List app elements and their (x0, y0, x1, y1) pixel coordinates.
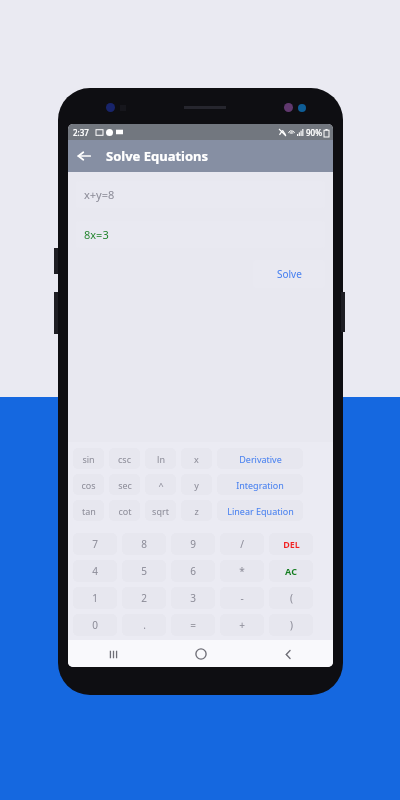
button[interactable]: 5 (122, 560, 166, 582)
staticText: AC (285, 565, 297, 577)
staticText: Solve (277, 267, 302, 281)
staticText: = (190, 618, 196, 632)
staticText: y (194, 479, 199, 491)
button[interactable]: = (171, 614, 215, 636)
button[interactable]: ( (269, 587, 313, 609)
staticText: 0 (92, 618, 98, 632)
staticText: 1 (92, 591, 98, 605)
staticText: ( (290, 591, 293, 605)
staticText: * (239, 564, 245, 578)
button[interactable]: sin (73, 448, 104, 469)
staticText: sqrt (152, 505, 169, 517)
staticText: 9 (190, 537, 196, 551)
staticText: 8 (141, 537, 147, 551)
staticText: cos (81, 479, 96, 491)
button[interactable]: Home (188, 641, 214, 667)
button[interactable]: / (220, 533, 264, 555)
staticText: csc (118, 453, 131, 465)
button[interactable]: DEL (269, 533, 313, 555)
staticText: / (240, 537, 244, 551)
button[interactable]: y (181, 474, 212, 495)
button[interactable]: ) (269, 614, 313, 636)
staticText: Linear Equation (227, 505, 294, 517)
button[interactable]: Recent apps (100, 641, 126, 667)
staticText: x+y=8 (84, 187, 115, 202)
staticText: ^ (158, 479, 164, 491)
staticText: Solve Equations (106, 147, 209, 165)
button[interactable]: 9 (171, 533, 215, 555)
button[interactable]: ln (145, 448, 176, 469)
button[interactable]: sqrt (145, 500, 176, 521)
button[interactable]: Derivative (217, 448, 303, 469)
button[interactable]: 1 (73, 587, 117, 609)
button[interactable]: Back (71, 143, 97, 169)
staticText: 8x=3 (84, 227, 109, 242)
button[interactable]: 2 (122, 587, 166, 609)
button[interactable]: * (220, 560, 264, 582)
staticText: sec (118, 479, 132, 491)
button[interactable]: z (181, 500, 212, 521)
staticText: 4 (92, 564, 98, 578)
button[interactable]: x+y=8 (76, 181, 325, 208)
button[interactable]: 0 (73, 614, 117, 636)
button[interactable]: 3 (171, 587, 215, 609)
staticText: 7 (92, 537, 98, 551)
staticText: 2 (141, 591, 147, 605)
button[interactable]: - (220, 587, 264, 609)
button[interactable]: Linear Equation (217, 500, 303, 521)
staticText: - (240, 591, 244, 605)
button[interactable]: Solve (253, 260, 325, 288)
button[interactable]: 6 (171, 560, 215, 582)
staticText: 90% (306, 127, 322, 138)
button[interactable]: Back (275, 641, 301, 667)
staticText: Integration (236, 479, 284, 491)
button[interactable]: 7 (73, 533, 117, 555)
button[interactable]: cos (73, 474, 104, 495)
staticText: z (194, 505, 199, 517)
button[interactable]: + (220, 614, 264, 636)
staticText: Derivative (239, 453, 282, 465)
button[interactable]: 8x=3 (76, 221, 325, 248)
button[interactable]: sec (109, 474, 140, 495)
staticText: ) (290, 618, 293, 632)
staticText: 2:37 (73, 127, 89, 138)
staticText: cot (118, 505, 132, 517)
staticText: + (239, 618, 245, 632)
staticText: 6 (190, 564, 196, 578)
staticText: x (194, 453, 199, 465)
button[interactable]: AC (269, 560, 313, 582)
staticText: sin (82, 453, 95, 465)
staticText: . (143, 618, 146, 632)
staticText: tan (82, 505, 96, 517)
button[interactable]: csc (109, 448, 140, 469)
button[interactable]: ^ (145, 474, 176, 495)
button[interactable]: 8 (122, 533, 166, 555)
button[interactable]: Integration (217, 474, 303, 495)
button[interactable]: tan (73, 500, 104, 521)
button[interactable]: cot (109, 500, 140, 521)
staticText: 5 (141, 564, 147, 578)
button[interactable]: 4 (73, 560, 117, 582)
staticText: DEL (283, 538, 300, 550)
staticText: 3 (190, 591, 196, 605)
staticText: ln (157, 453, 165, 465)
button[interactable]: x (181, 448, 212, 469)
